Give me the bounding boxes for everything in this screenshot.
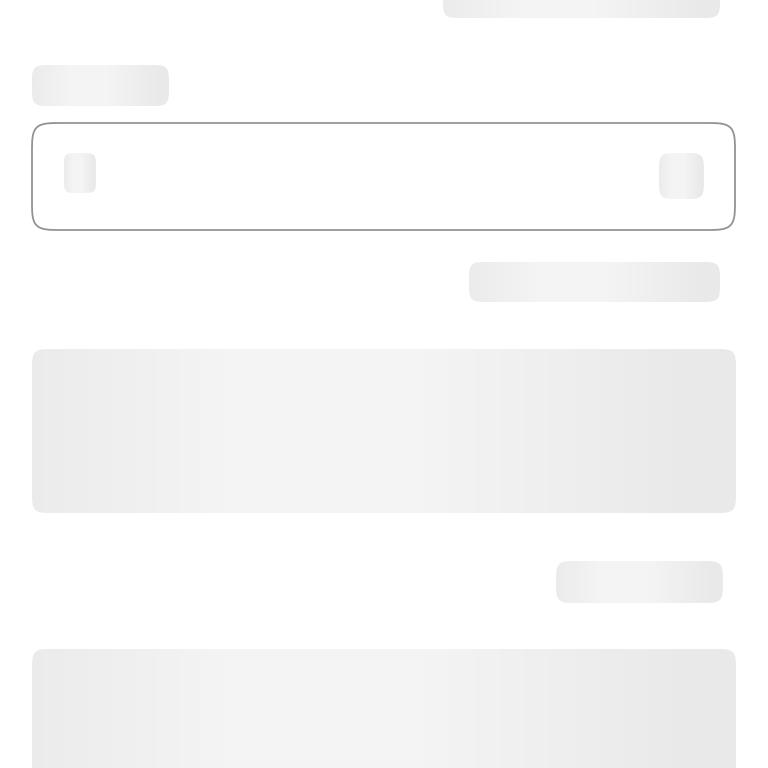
button[interactable]: Send (659, 153, 704, 199)
button[interactable]: Attach (64, 153, 96, 193)
